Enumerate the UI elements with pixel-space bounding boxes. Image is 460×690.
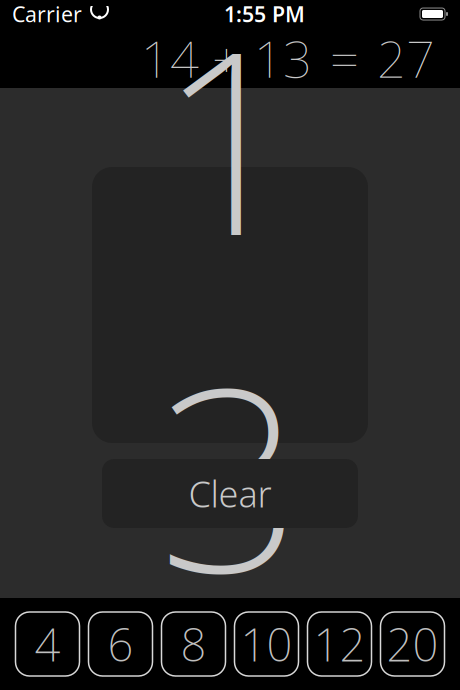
button[interactable]: 8 — [161, 612, 225, 676]
staticText: 1:55 PM — [224, 0, 305, 28]
button[interactable]: 4 — [15, 612, 79, 676]
staticText: Clear — [188, 470, 271, 517]
button[interactable]: 10 — [234, 612, 298, 676]
staticText: 4 — [34, 614, 60, 674]
button[interactable]: 20 — [380, 612, 444, 676]
staticText: 27 — [377, 24, 435, 92]
button[interactable]: 12 — [307, 612, 371, 676]
staticText: 12 — [313, 614, 365, 674]
staticText: 14 + 13 — [141, 24, 312, 92]
button[interactable]: Clear — [102, 459, 358, 528]
staticText: 10 — [240, 614, 292, 674]
staticText: Carrier — [12, 0, 82, 28]
button[interactable]: 6 — [88, 612, 152, 676]
staticText: = — [330, 24, 359, 92]
staticText: 6 — [107, 614, 133, 674]
staticText: 20 — [386, 614, 438, 674]
staticText: 13 — [158, 0, 302, 641]
staticText: 8 — [180, 614, 206, 674]
